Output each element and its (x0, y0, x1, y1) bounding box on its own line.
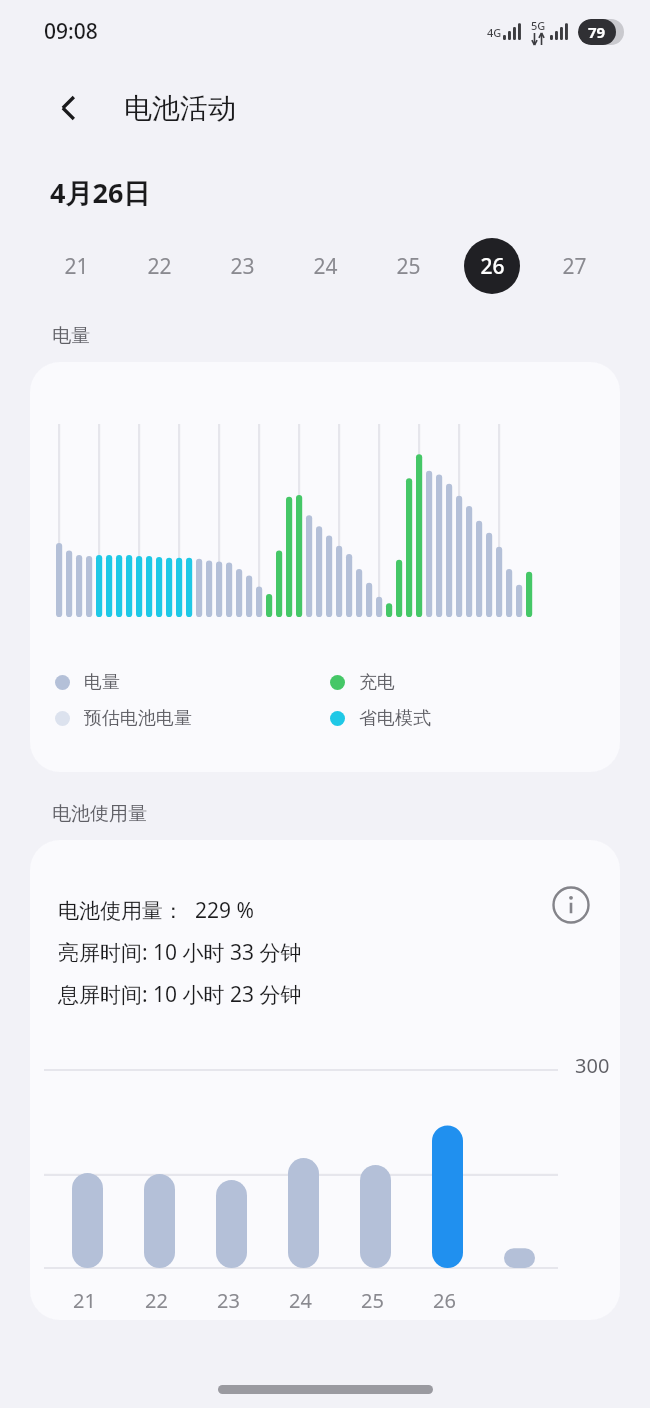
staticText: 09:08 (44, 17, 98, 46)
staticText: 电池使用量： 229 % (58, 896, 254, 925)
button[interactable]: 返回 (46, 85, 92, 131)
staticText: 预估电池电量 (84, 707, 192, 730)
button[interactable]: 27 (533, 235, 616, 297)
staticText: 24 (313, 252, 338, 281)
staticText: 充电 (359, 671, 395, 694)
staticText: 5G (531, 18, 546, 33)
staticText: 22 (147, 252, 172, 281)
staticText: 300 (575, 1052, 610, 1079)
button[interactable]: 23 (201, 235, 284, 297)
button[interactable]: 21 (34, 235, 118, 297)
staticText: 25 (396, 252, 421, 281)
button[interactable]: 26 (450, 235, 533, 297)
staticText: 电量 (52, 324, 90, 348)
staticText: 21 (64, 252, 89, 281)
staticText: 21 (73, 1287, 96, 1314)
staticText: 4G (487, 25, 502, 40)
staticText: 26 (480, 252, 505, 281)
staticText: 27 (562, 252, 587, 281)
button[interactable]: 25 (367, 235, 450, 297)
button[interactable]: 电池使用量： 229 % (30, 840, 620, 1320)
staticText: 亮屏时间: 10 小时 33 分钟 (58, 938, 302, 967)
staticText: 24 (289, 1287, 312, 1314)
button[interactable]: 22 (118, 235, 201, 297)
staticText: 4月26日 (50, 174, 151, 211)
staticText: 79 (588, 22, 606, 42)
staticText: 电池使用量 (52, 802, 147, 826)
button[interactable]: 信息 (548, 882, 594, 928)
staticText: 23 (217, 1287, 240, 1314)
staticText: 息屏时间: 10 小时 23 分钟 (58, 980, 302, 1009)
staticText: 省电模式 (359, 707, 431, 730)
button[interactable]: 电量 (30, 362, 620, 772)
staticText: 22 (145, 1287, 168, 1314)
staticText: 电池活动 (124, 91, 236, 126)
staticText: 25 (361, 1287, 384, 1314)
staticText: 26 (433, 1287, 456, 1314)
staticText: 电量 (84, 671, 120, 694)
staticText: 23 (230, 252, 255, 281)
button[interactable]: 24 (284, 235, 367, 297)
